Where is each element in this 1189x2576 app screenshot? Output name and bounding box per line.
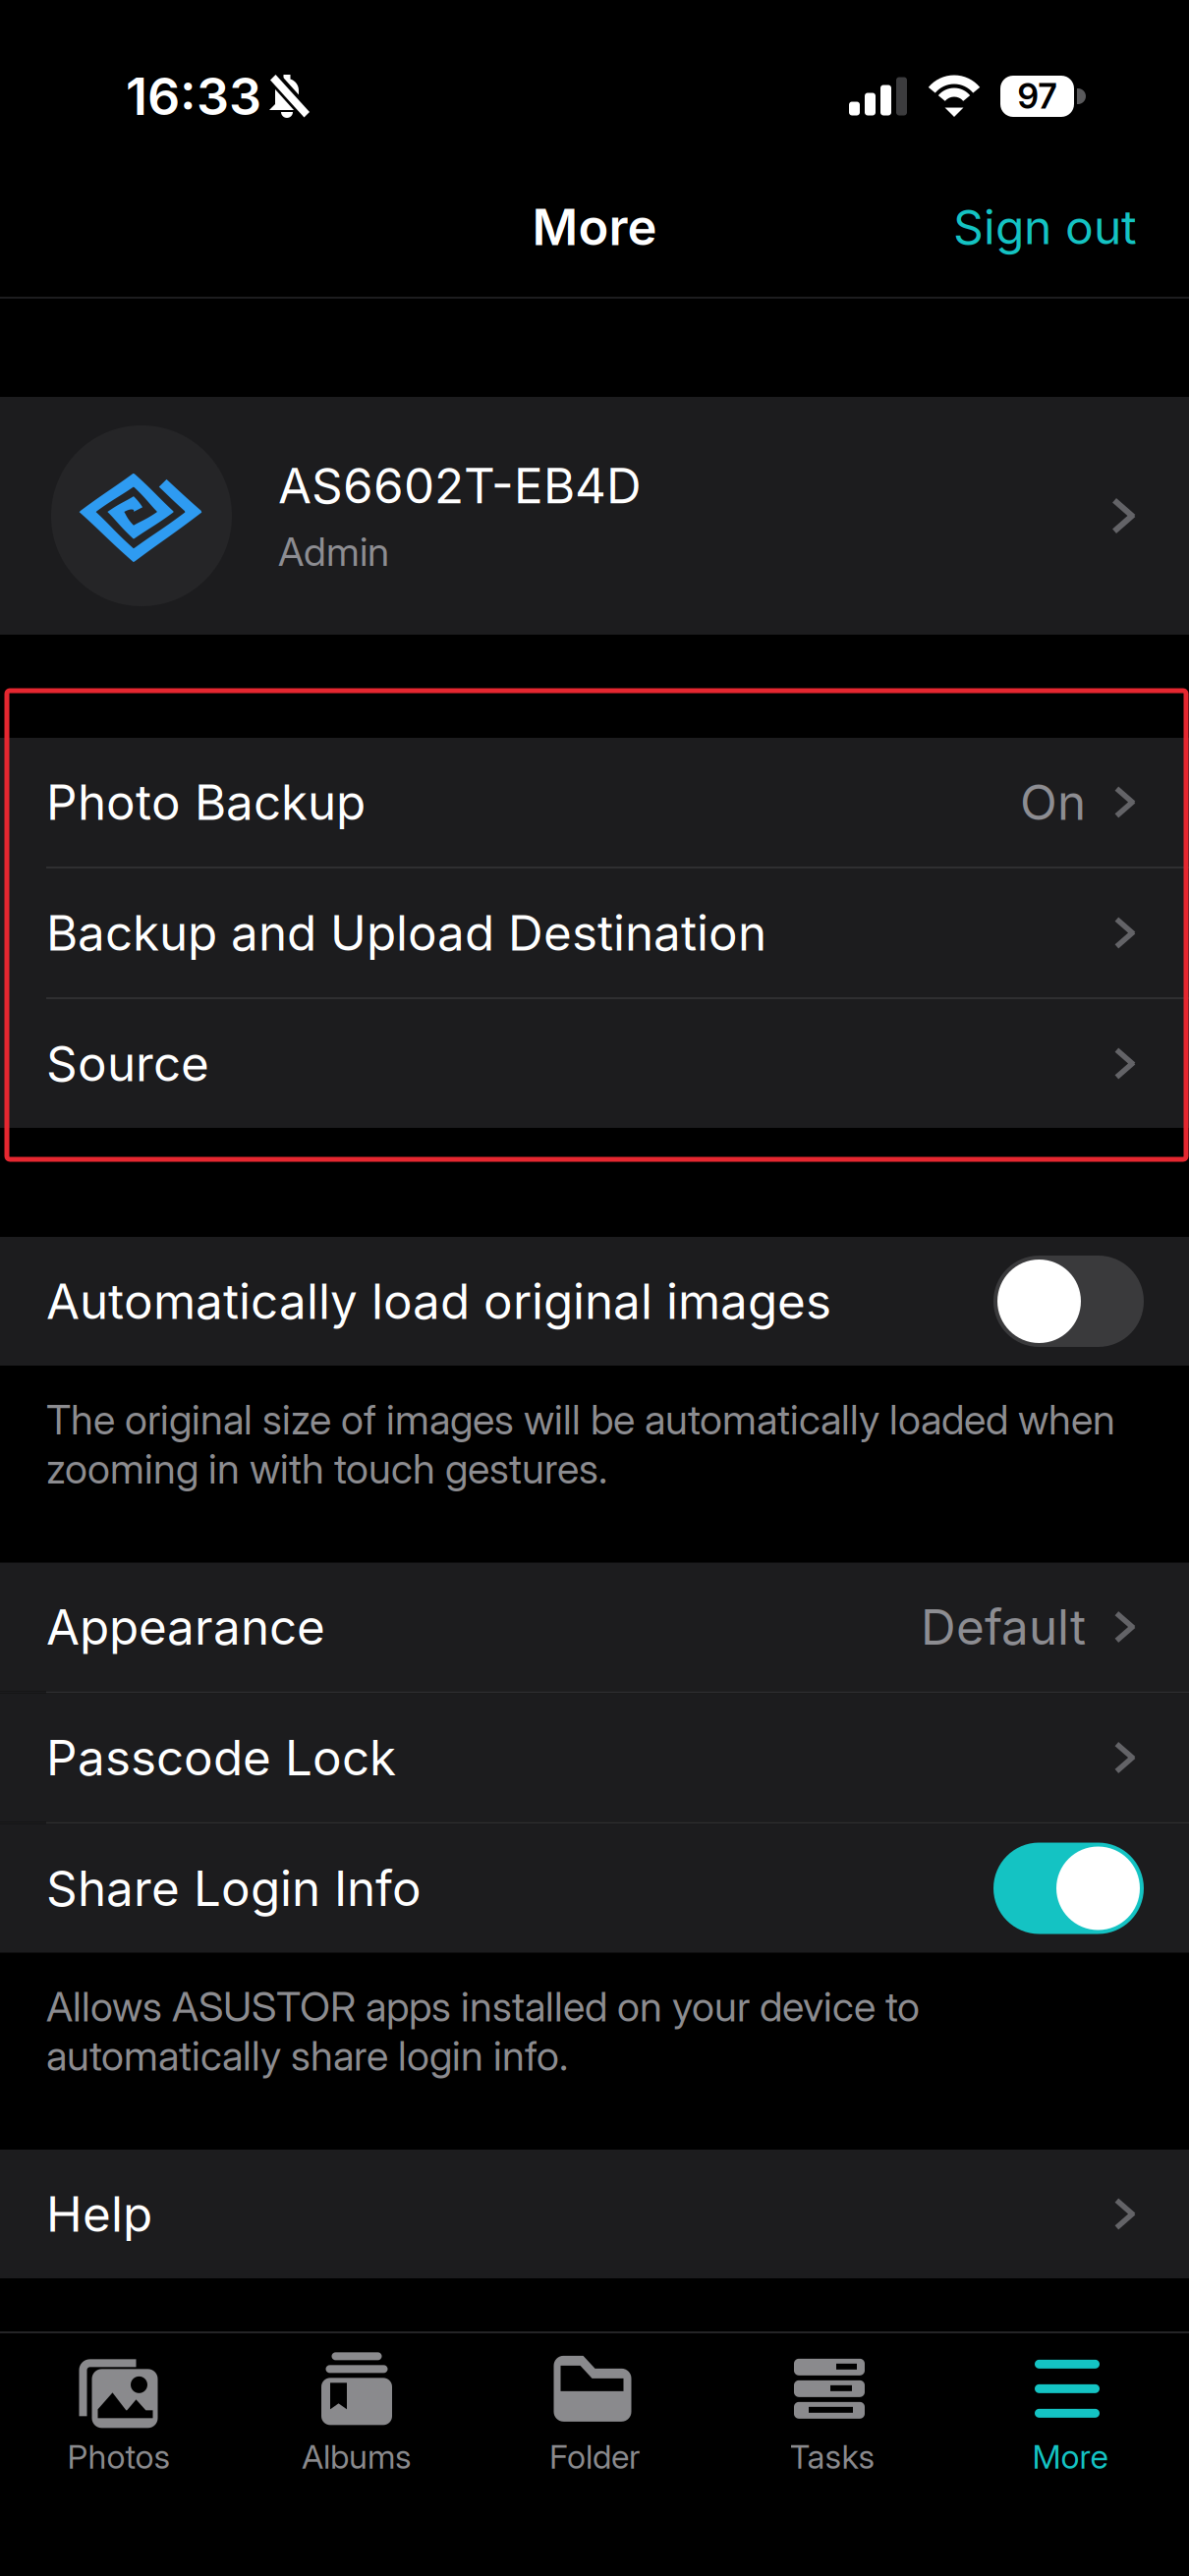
button[interactable]: Albums [238,2354,476,2476]
button[interactable]: Tasks [713,2354,951,2476]
staticText: Appearance [46,1598,325,1656]
staticText: Default [921,1598,1086,1656]
button[interactable]: Sign out [953,198,1137,256]
staticText: Backup and Upload Destination [46,904,766,962]
button[interactable]: Appearance [0,1563,1189,1691]
staticText: More [532,197,657,257]
button[interactable]: Share Login Info [993,1843,1144,1934]
staticText: 97 [1018,76,1057,117]
staticText: Allows ASUSTOR apps installed on your de… [46,1982,920,2080]
staticText: Albums [302,2437,412,2476]
staticText: Photo Backup [46,773,366,832]
staticText: Sign out [953,198,1137,256]
button[interactable]: Automatically load original images [993,1256,1144,1347]
staticText: 16:33 [126,65,261,127]
staticText: AS6602T-EB4D [278,456,642,515]
button[interactable]: Photo Backup [0,738,1189,867]
button[interactable]: More [951,2354,1189,2476]
staticText: Admin [278,528,389,575]
button[interactable]: Folder [476,2354,713,2476]
staticText: Photos [67,2437,170,2476]
staticText: Tasks [790,2437,875,2476]
staticText: Folder [549,2437,640,2476]
staticText: More [1032,2437,1108,2476]
staticText: Passcode Lock [46,1728,396,1787]
staticText: The original size of images will be auto… [46,1395,1115,1493]
button[interactable]: Passcode Lock [0,1693,1189,1822]
button[interactable]: Backup and Upload Destination [0,868,1189,997]
button[interactable]: Photos [0,2354,238,2476]
staticText: Source [46,1034,209,1093]
staticText: On [1020,773,1086,832]
staticText: Help [46,2185,152,2243]
staticText: Automatically load original images [46,1272,831,1331]
button[interactable]: Source [0,999,1189,1128]
button[interactable]: AS6602T-EB4D [0,397,1189,635]
button[interactable]: Help [0,2150,1189,2278]
staticText: Share Login Info [46,1859,422,1918]
